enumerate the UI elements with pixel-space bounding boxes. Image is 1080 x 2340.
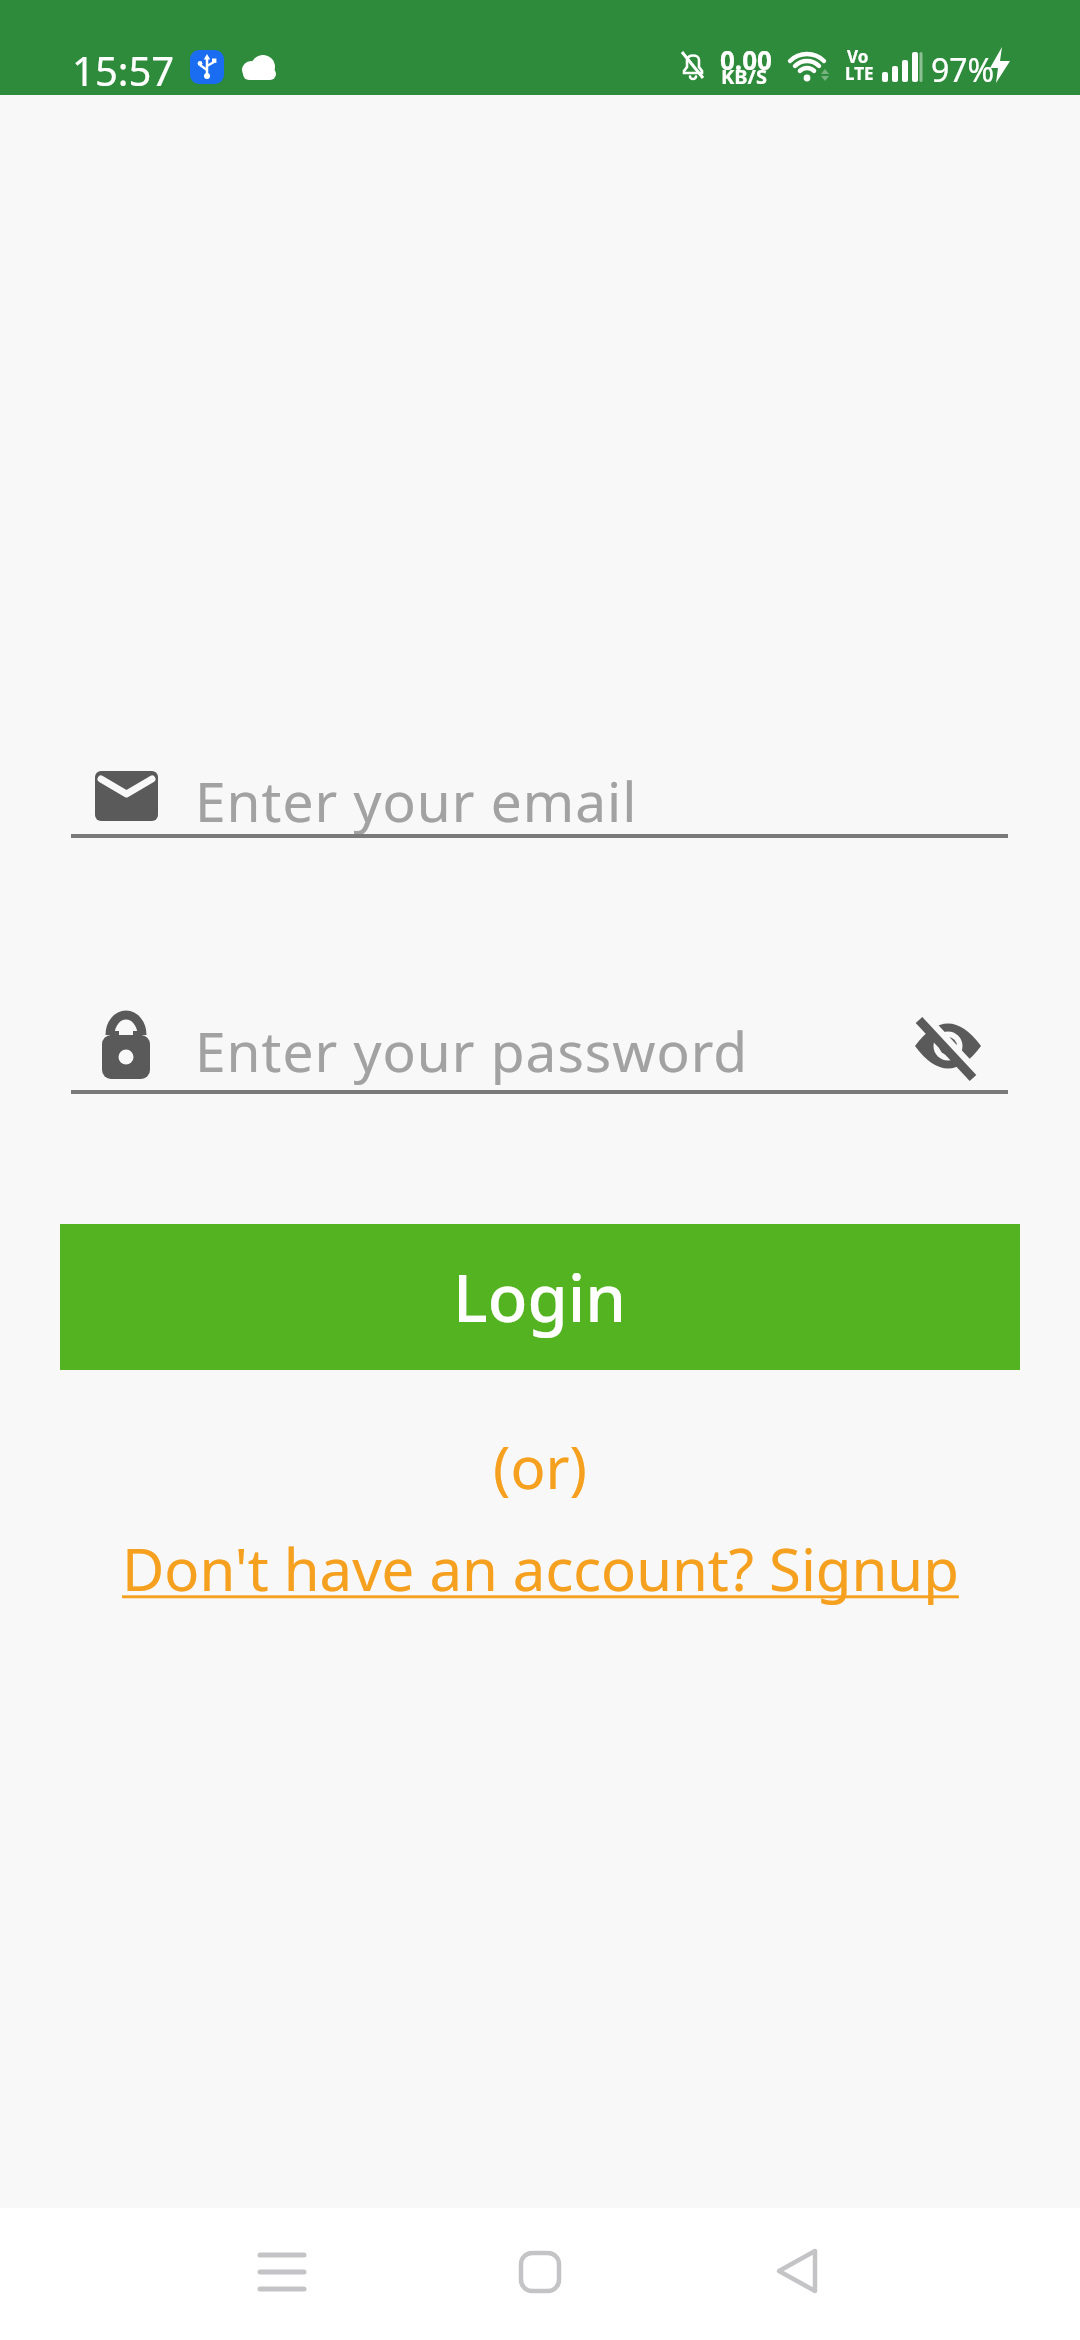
button[interactable]: Login (60, 1224, 1020, 1370)
staticText: LTE (845, 62, 874, 85)
staticText: Enter your password (195, 1013, 749, 1088)
staticText: 0.00 (720, 42, 772, 77)
button[interactable] (910, 1008, 986, 1084)
staticText: (or) (493, 1427, 587, 1506)
button[interactable]: Don't have an account? Signup (122, 1529, 959, 1608)
button[interactable] (250, 2243, 314, 2307)
staticText: 97% (931, 48, 995, 92)
staticText: Login (453, 1253, 627, 1342)
staticText: Vo (847, 45, 869, 68)
staticText: Enter your email (195, 763, 638, 838)
button[interactable] (765, 2243, 829, 2307)
staticText: 15:57 (72, 43, 175, 97)
staticText: KB/S (721, 63, 767, 90)
button[interactable] (508, 2243, 572, 2307)
